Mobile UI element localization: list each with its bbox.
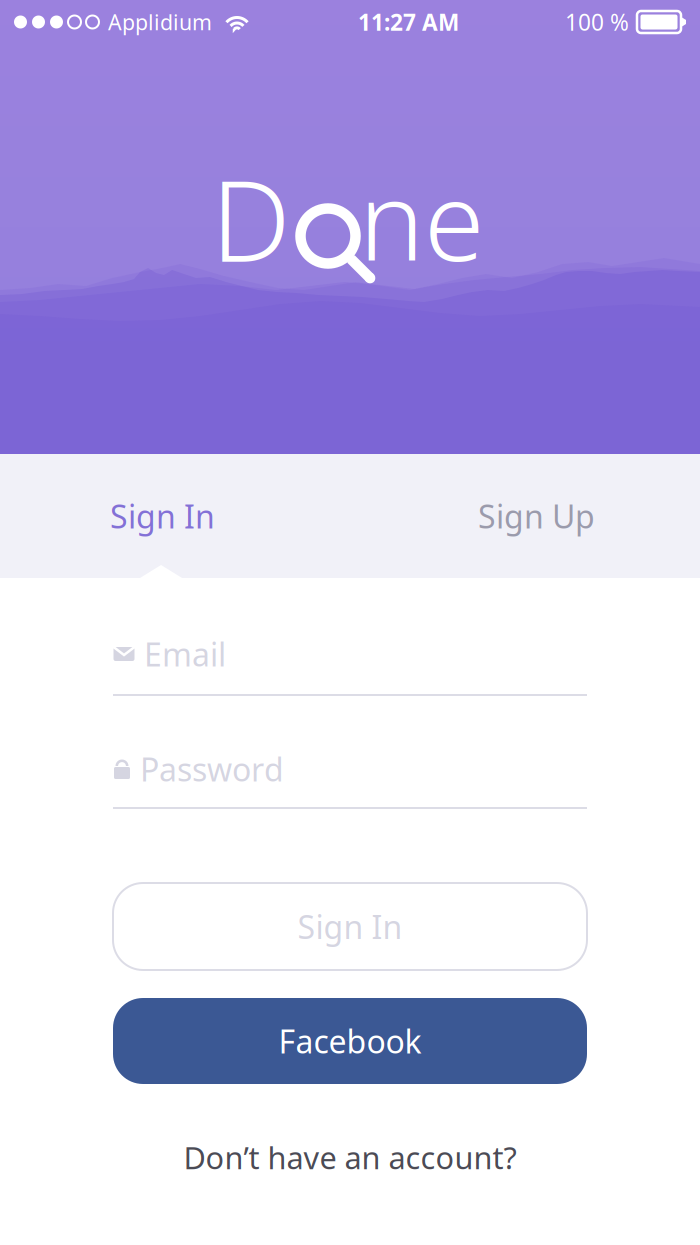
button[interactable]: Don’t have an account? (183, 1137, 516, 1178)
button[interactable]: Sign Up (350, 454, 700, 578)
staticText: Applidium (108, 8, 212, 36)
staticText: D (211, 144, 291, 293)
staticText: Sign Up (478, 495, 595, 537)
staticText: Sign In (297, 905, 402, 948)
staticText: Sign In (110, 495, 215, 537)
staticText: Email (144, 633, 226, 675)
staticText: 100 % (565, 7, 629, 37)
staticText: 11:27 AM (358, 7, 459, 37)
staticText: Facebook (278, 1020, 421, 1062)
staticText: ne (359, 146, 484, 291)
button[interactable]: Sign In (113, 883, 587, 970)
staticText: Password (140, 748, 284, 790)
button[interactable]: Sign In (0, 454, 350, 578)
button[interactable]: Facebook (113, 998, 587, 1084)
staticText: Don’t have an account? (183, 1137, 516, 1178)
